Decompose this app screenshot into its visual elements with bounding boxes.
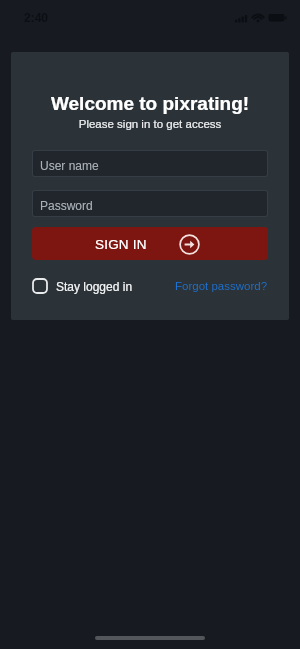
staticText: Stay logged in [56,280,133,293]
button[interactable]: Stay logged in [32,278,133,294]
button[interactable]: Password [33,191,267,216]
button[interactable]: SIGN IN [32,227,268,260]
staticText: SIGN IN [95,237,147,252]
staticText: 2:40 [24,11,49,24]
button[interactable]: User name [33,151,267,176]
staticText: User name [40,159,99,172]
staticText: Password [40,199,93,212]
staticText: Welcome to pixrating! [11,93,289,114]
button[interactable]: Forgot password? [175,280,268,293]
staticText: Please sign in to get access [11,118,289,131]
